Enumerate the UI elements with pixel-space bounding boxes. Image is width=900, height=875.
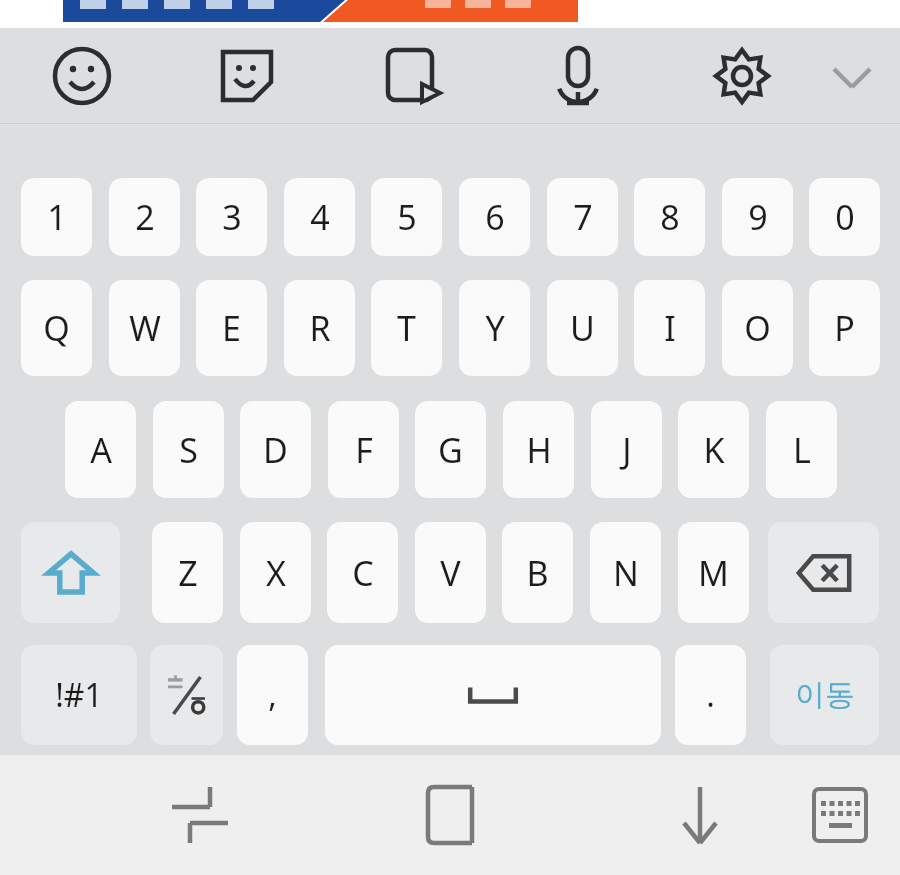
staticText: I bbox=[664, 305, 676, 351]
button[interactable]: Change keyboard bbox=[795, 770, 885, 860]
button[interactable]: A bbox=[65, 401, 136, 498]
button[interactable]: Recents bbox=[155, 770, 245, 860]
button[interactable]: K bbox=[678, 401, 749, 498]
button[interactable]: 0 bbox=[809, 178, 880, 256]
button[interactable]: Shift bbox=[21, 522, 120, 623]
staticText: T bbox=[397, 305, 416, 351]
staticText: E bbox=[222, 305, 241, 351]
button[interactable]: Collapse keyboard bbox=[816, 40, 888, 112]
staticText: 8 bbox=[660, 194, 680, 240]
button[interactable]: Settings bbox=[706, 40, 778, 112]
button[interactable]: H bbox=[503, 401, 574, 498]
staticText: H bbox=[526, 427, 552, 473]
staticText: L bbox=[793, 427, 811, 473]
button[interactable]: Korean English toggle bbox=[150, 645, 223, 745]
button[interactable]: 4 bbox=[284, 178, 355, 256]
staticText: Y bbox=[485, 305, 505, 351]
staticText: 9 bbox=[748, 194, 768, 240]
button[interactable]: R bbox=[284, 280, 355, 376]
button[interactable]: Home bbox=[405, 770, 495, 860]
button[interactable]: 9 bbox=[722, 178, 793, 256]
button[interactable]: Space bbox=[325, 645, 661, 745]
staticText: J bbox=[622, 427, 632, 473]
staticText: R bbox=[309, 305, 331, 351]
button[interactable]: GIF bbox=[376, 40, 448, 112]
button[interactable]: S bbox=[153, 401, 224, 498]
button[interactable]: N bbox=[590, 522, 661, 623]
staticText: X bbox=[266, 550, 286, 596]
staticText: S bbox=[179, 427, 198, 473]
button[interactable]: U bbox=[547, 280, 618, 376]
button[interactable]: 3 bbox=[196, 178, 267, 256]
button[interactable]: V bbox=[415, 522, 486, 623]
button[interactable]: T bbox=[371, 280, 442, 376]
button[interactable]: Stickers bbox=[211, 40, 283, 112]
staticText: B bbox=[526, 550, 549, 596]
staticText: , bbox=[268, 673, 277, 717]
button[interactable]: Z bbox=[152, 522, 223, 623]
button[interactable]: I bbox=[634, 280, 705, 376]
button[interactable]: X bbox=[240, 522, 311, 623]
staticText: F bbox=[355, 427, 373, 473]
staticText: 이동 bbox=[795, 676, 855, 714]
staticText: P bbox=[834, 305, 855, 351]
button[interactable]: 6 bbox=[459, 178, 530, 256]
staticText: 5 bbox=[397, 194, 417, 240]
staticText: G bbox=[438, 427, 463, 473]
button[interactable]: B bbox=[502, 522, 573, 623]
staticText: 3 bbox=[222, 194, 242, 240]
button[interactable]: P bbox=[809, 280, 880, 376]
staticText: 2 bbox=[135, 194, 155, 240]
button[interactable]: F bbox=[328, 401, 399, 498]
button[interactable]: 8 bbox=[634, 178, 705, 256]
staticText: Z bbox=[178, 550, 198, 596]
staticText: 4 bbox=[310, 194, 330, 240]
button[interactable]: Y bbox=[459, 280, 530, 376]
button[interactable]: G bbox=[415, 401, 486, 498]
staticText: U bbox=[570, 305, 595, 351]
staticText: W bbox=[129, 305, 161, 351]
button[interactable]: Hide keyboard bbox=[655, 770, 745, 860]
button[interactable]: Voice input bbox=[542, 40, 614, 112]
staticText: . bbox=[706, 673, 715, 717]
staticText: 6 bbox=[485, 194, 505, 240]
staticText: N bbox=[613, 550, 639, 596]
button[interactable]: 이동 bbox=[770, 645, 879, 745]
button[interactable]: E bbox=[196, 280, 267, 376]
staticText: C bbox=[352, 550, 374, 596]
staticText: 7 bbox=[573, 194, 593, 240]
button[interactable]: W bbox=[109, 280, 180, 376]
button[interactable]: Q bbox=[21, 280, 92, 376]
button[interactable]: O bbox=[722, 280, 793, 376]
button[interactable]: 2 bbox=[109, 178, 180, 256]
staticText: K bbox=[703, 427, 725, 473]
staticText: 0 bbox=[835, 194, 855, 240]
staticText: Q bbox=[43, 305, 70, 351]
button[interactable]: M bbox=[678, 522, 749, 623]
button[interactable]: Emoji bbox=[46, 40, 118, 112]
button[interactable]: , bbox=[237, 645, 308, 745]
staticText: V bbox=[440, 550, 461, 596]
button[interactable]: J bbox=[591, 401, 662, 498]
button[interactable]: !#1 bbox=[21, 645, 137, 745]
button[interactable]: Backspace bbox=[768, 522, 879, 623]
staticText: O bbox=[744, 305, 771, 351]
staticText: 1 bbox=[47, 194, 67, 240]
button[interactable]: C bbox=[327, 522, 398, 623]
staticText: M bbox=[698, 550, 729, 596]
button[interactable]: L bbox=[766, 401, 837, 498]
button[interactable]: D bbox=[240, 401, 311, 498]
button[interactable]: 1 bbox=[21, 178, 92, 256]
staticText: A bbox=[90, 427, 112, 473]
staticText: D bbox=[263, 427, 288, 473]
staticText: !#1 bbox=[55, 673, 103, 717]
button[interactable]: 5 bbox=[371, 178, 442, 256]
button[interactable]: . bbox=[675, 645, 746, 745]
button[interactable]: 7 bbox=[547, 178, 618, 256]
